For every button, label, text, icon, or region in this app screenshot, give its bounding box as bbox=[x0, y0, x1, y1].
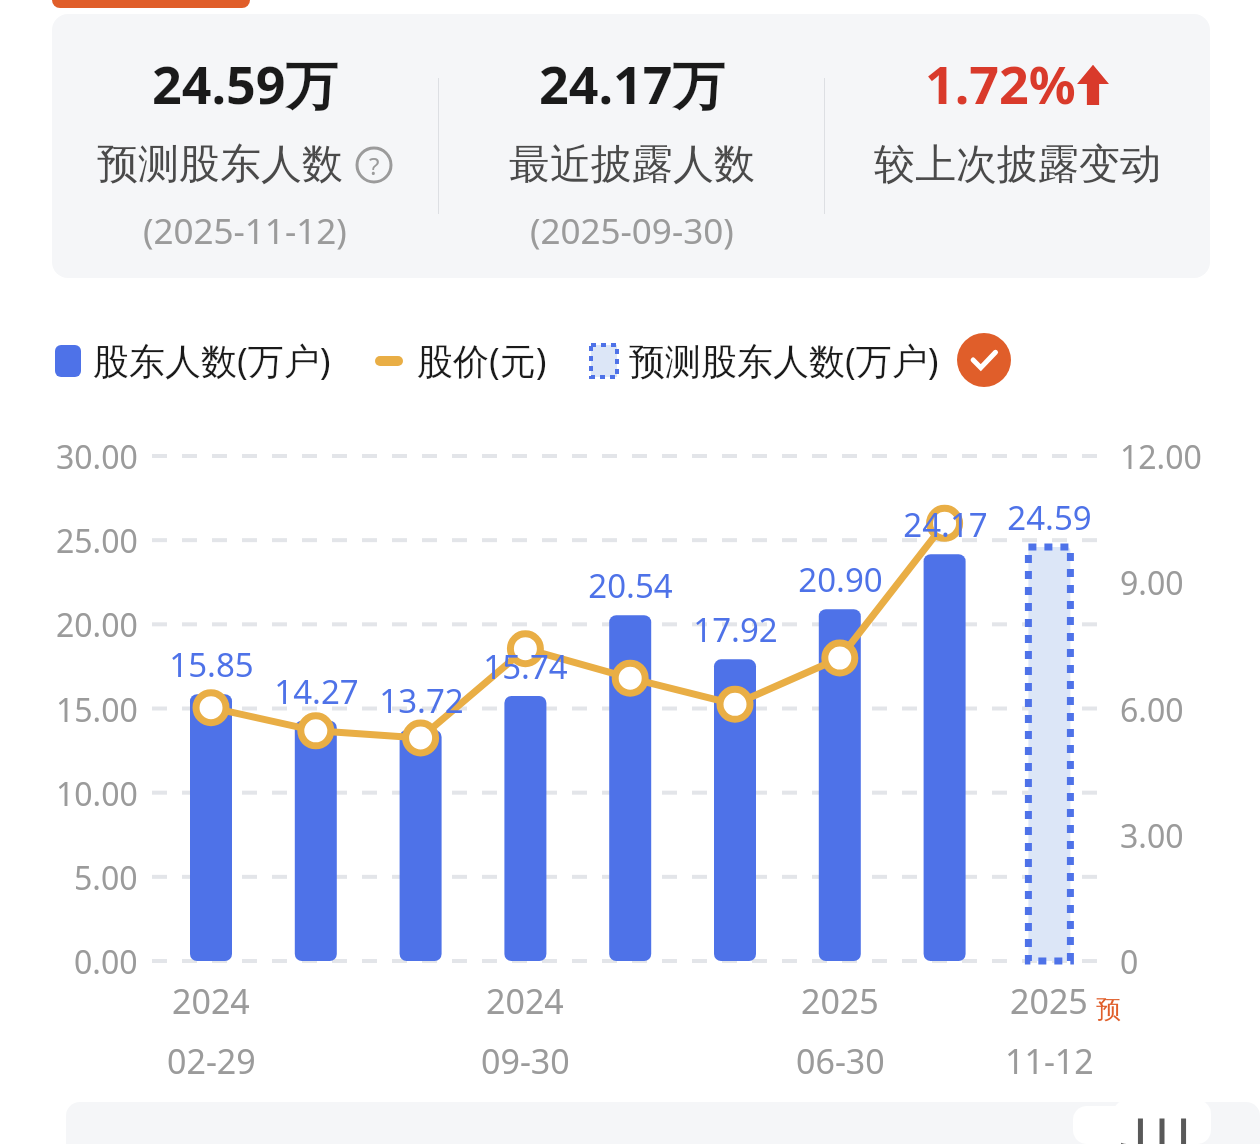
staticText: 最近披露人数 bbox=[509, 139, 755, 191]
button[interactable]: 单柱图 bbox=[1073, 1106, 1165, 1144]
staticText: 0.00 bbox=[74, 940, 138, 984]
staticText: 20.90 bbox=[798, 557, 883, 602]
staticText: 24.59万 bbox=[152, 48, 338, 119]
staticText: 15.85 bbox=[169, 642, 254, 687]
staticText: 24.17 bbox=[903, 502, 988, 547]
staticText: 2025 bbox=[1010, 978, 1088, 1024]
staticText: 11-12 bbox=[1005, 1038, 1094, 1084]
staticText: 2024 bbox=[172, 978, 250, 1024]
staticText: 3.00 bbox=[1120, 814, 1184, 858]
staticText: 06-30 bbox=[796, 1038, 885, 1084]
staticText: 预测股东人数 bbox=[97, 139, 343, 191]
staticText: 9.00 bbox=[1120, 561, 1184, 605]
button[interactable]: 说明 bbox=[355, 146, 393, 184]
button[interactable]: 股东人数(万户) bbox=[55, 336, 331, 385]
staticText: 15.74 bbox=[483, 644, 568, 689]
staticText: 25.00 bbox=[56, 519, 138, 563]
staticText: 预测股东人数(万户) bbox=[629, 336, 939, 385]
staticText: 较上次披露变动 bbox=[874, 139, 1161, 191]
staticText: 09-30 bbox=[481, 1038, 570, 1084]
staticText: (2025-11-12) bbox=[143, 207, 347, 255]
button[interactable]: 1.72% bbox=[825, 14, 1210, 278]
staticText: ? bbox=[369, 149, 380, 182]
staticText: 20.00 bbox=[56, 603, 138, 647]
button[interactable]: 标签 bbox=[52, 0, 250, 8]
button[interactable]: 已选中 bbox=[957, 333, 1011, 387]
staticText: 2025 bbox=[801, 978, 879, 1024]
button[interactable]: 24.59万 bbox=[52, 14, 438, 278]
button[interactable]: 预测股东人数(万户) bbox=[591, 336, 939, 385]
button[interactable]: 24.17万 bbox=[439, 14, 824, 278]
staticText: 1.72% bbox=[925, 48, 1076, 119]
staticText: 14.27 bbox=[274, 669, 359, 714]
staticText: 股价(元) bbox=[417, 336, 547, 385]
staticText: (2025-09-30) bbox=[530, 207, 734, 255]
staticText: 24.17万 bbox=[539, 48, 725, 119]
staticText: 02-29 bbox=[167, 1038, 256, 1084]
staticText: 2024 bbox=[486, 978, 564, 1024]
staticText: 预 bbox=[1096, 994, 1121, 1025]
staticText: 30.00 bbox=[56, 435, 138, 479]
staticText: 13.72 bbox=[379, 678, 464, 723]
staticText: 10.00 bbox=[56, 772, 138, 816]
staticText: 20.54 bbox=[588, 563, 673, 608]
staticText: 0 bbox=[1120, 940, 1139, 984]
staticText: 股东人数(万户) bbox=[93, 336, 331, 385]
staticText: 17.92 bbox=[693, 607, 778, 652]
staticText: 12.00 bbox=[1120, 435, 1202, 479]
staticText: 5.00 bbox=[74, 856, 138, 900]
staticText: 24.59 bbox=[1007, 495, 1092, 540]
button[interactable]: 多柱图 bbox=[1113, 1100, 1211, 1144]
staticText: 6.00 bbox=[1120, 688, 1184, 732]
button[interactable]: 股价(元) bbox=[375, 336, 547, 385]
staticText: 15.00 bbox=[56, 688, 138, 732]
